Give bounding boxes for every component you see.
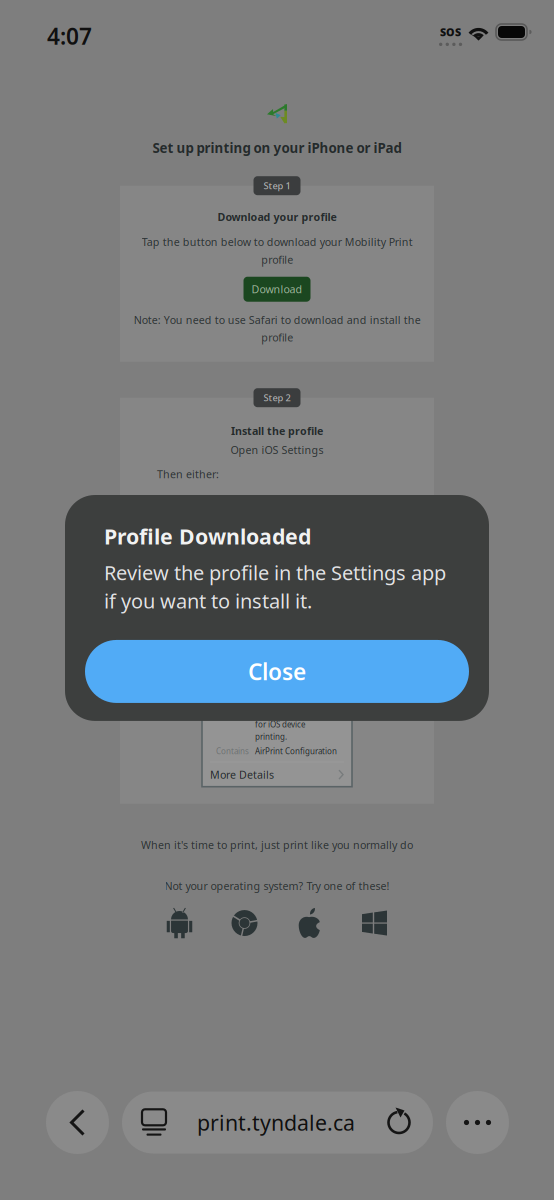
staticText: print.tyndale.ca — [197, 1108, 355, 1137]
staticText: Download — [251, 282, 302, 296]
button[interactable]: Apple — [297, 907, 321, 938]
staticText: Set up printing on your iPhone or iPad — [152, 139, 401, 157]
button[interactable]: More — [446, 1091, 509, 1154]
staticText: Review the profile in the Settings app i… — [104, 559, 446, 614]
staticText: AirPrint Configuration — [255, 746, 337, 756]
button[interactable]: Back — [46, 1091, 109, 1154]
button[interactable]: Windows — [362, 910, 387, 935]
staticText: Step 1 — [263, 179, 290, 192]
staticText: SOS — [440, 25, 461, 39]
staticText: Open iOS Settings — [230, 443, 323, 457]
staticText: Description — [212, 695, 249, 716]
staticText: Download your profile — [217, 210, 336, 224]
staticText: Install the profile — [231, 424, 323, 438]
staticText: Close — [248, 656, 306, 686]
staticText: More Details — [210, 767, 274, 782]
staticText: PaperCut printer configuration for iOS d… — [255, 695, 318, 742]
staticText: 4:07 — [47, 21, 92, 51]
staticText: Then either: — [157, 467, 219, 481]
button[interactable]: Close — [85, 640, 469, 703]
button[interactable]: Android — [167, 908, 192, 938]
staticText: Step 2 — [263, 391, 290, 404]
button[interactable]: Download — [243, 277, 310, 302]
button[interactable]: Chrome — [231, 910, 257, 936]
staticText: When it's time to print, just print like… — [141, 838, 413, 852]
button[interactable]: print.tyndale.ca — [122, 1091, 433, 1153]
staticText: Tap the button below to download your Mo… — [141, 235, 412, 267]
staticText: Not your operating system? Try one of th… — [164, 879, 389, 893]
staticText: Contains — [216, 746, 249, 756]
staticText: Profile Downloaded — [104, 522, 311, 550]
staticText: Note: You need to use Safari to download… — [133, 313, 420, 344]
